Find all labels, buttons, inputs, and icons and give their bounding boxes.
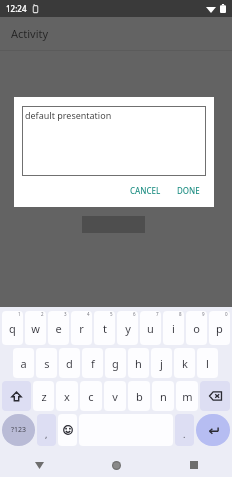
button[interactable]: q — [2, 311, 23, 345]
button[interactable]: t — [94, 311, 115, 345]
button[interactable]: Recents — [155, 453, 232, 477]
staticText: 0 — [225, 311, 228, 317]
staticText: n — [160, 389, 167, 404]
button[interactable]: Emoji — [58, 414, 77, 446]
staticText: 8 — [179, 311, 182, 317]
staticText: h — [135, 356, 142, 371]
button[interactable]: n — [152, 381, 174, 411]
staticText: 3 — [64, 311, 67, 317]
staticText: r — [79, 321, 84, 336]
button[interactable]: d — [59, 348, 80, 378]
staticText: x — [64, 389, 70, 404]
staticText: z — [41, 389, 47, 404]
button[interactable]: y — [117, 311, 138, 345]
button[interactable]: Home — [78, 453, 155, 477]
button[interactable]: p — [209, 311, 230, 345]
staticText: DONE — [177, 185, 200, 196]
button[interactable]: l — [197, 348, 218, 378]
button[interactable]: h — [128, 348, 149, 378]
staticText: 5 — [110, 311, 113, 317]
staticText: p — [216, 321, 223, 336]
staticText: 4 — [87, 311, 90, 317]
staticText: t — [103, 321, 107, 336]
staticText: j — [160, 356, 163, 371]
button[interactable]: x — [56, 381, 78, 411]
staticText: c — [88, 389, 94, 404]
button[interactable]: j — [151, 348, 172, 378]
button[interactable]: i — [163, 311, 184, 345]
staticText: b — [136, 389, 143, 404]
staticText: d — [66, 356, 73, 371]
button[interactable]: Enter — [196, 414, 230, 446]
staticText: a — [20, 356, 27, 371]
button[interactable]: Back — [0, 453, 78, 477]
staticText: k — [182, 356, 188, 371]
button[interactable]: f — [82, 348, 103, 378]
button[interactable]: default presentation — [22, 106, 206, 176]
staticText: i — [172, 321, 175, 336]
staticText: o — [193, 321, 200, 336]
button[interactable]: Shift — [2, 381, 31, 411]
button[interactable]: u — [140, 311, 161, 345]
staticText: q — [9, 321, 16, 336]
button[interactable]: a — [13, 348, 34, 378]
button[interactable]: . — [175, 414, 194, 446]
staticText: ?123 — [11, 425, 27, 435]
staticText: s — [44, 356, 50, 371]
staticText: f — [91, 356, 95, 371]
button[interactable]: v — [104, 381, 126, 411]
staticText: 9 — [202, 311, 205, 317]
staticText: CANCEL — [130, 185, 161, 196]
staticText: default presentation — [25, 109, 112, 121]
staticText: e — [55, 321, 62, 336]
staticText: l — [206, 356, 209, 371]
staticText: 7 — [156, 311, 159, 317]
button[interactable]: z — [33, 381, 54, 411]
staticText: y — [125, 321, 131, 336]
button[interactable]: s — [36, 348, 57, 378]
staticText: . — [183, 428, 186, 440]
button[interactable]: Backspace — [200, 381, 230, 411]
button[interactable]: DONE — [171, 181, 206, 200]
button[interactable]: o — [186, 311, 207, 345]
button[interactable]: k — [174, 348, 195, 378]
button[interactable]: r — [71, 311, 92, 345]
button[interactable]: ?123 — [2, 414, 35, 446]
button[interactable]: CANCEL — [124, 181, 167, 200]
staticText: w — [31, 321, 40, 336]
staticText: Activity — [11, 26, 49, 41]
button[interactable]: e — [48, 311, 69, 345]
staticText: 6 — [133, 311, 136, 317]
button[interactable]: m — [176, 381, 198, 411]
button[interactable]: b — [128, 381, 150, 411]
staticText: 12:24 — [6, 3, 27, 14]
button[interactable]: g — [105, 348, 126, 378]
button[interactable]: w — [25, 311, 46, 345]
button[interactable]: c — [80, 381, 102, 411]
staticText: g — [112, 356, 119, 371]
staticText: v — [112, 389, 118, 404]
staticText: m — [182, 389, 193, 404]
button[interactable]: , — [37, 414, 56, 446]
staticText: u — [147, 321, 154, 336]
staticText: , — [45, 428, 48, 440]
staticText: 2 — [41, 311, 44, 317]
staticText: 1 — [18, 311, 21, 317]
